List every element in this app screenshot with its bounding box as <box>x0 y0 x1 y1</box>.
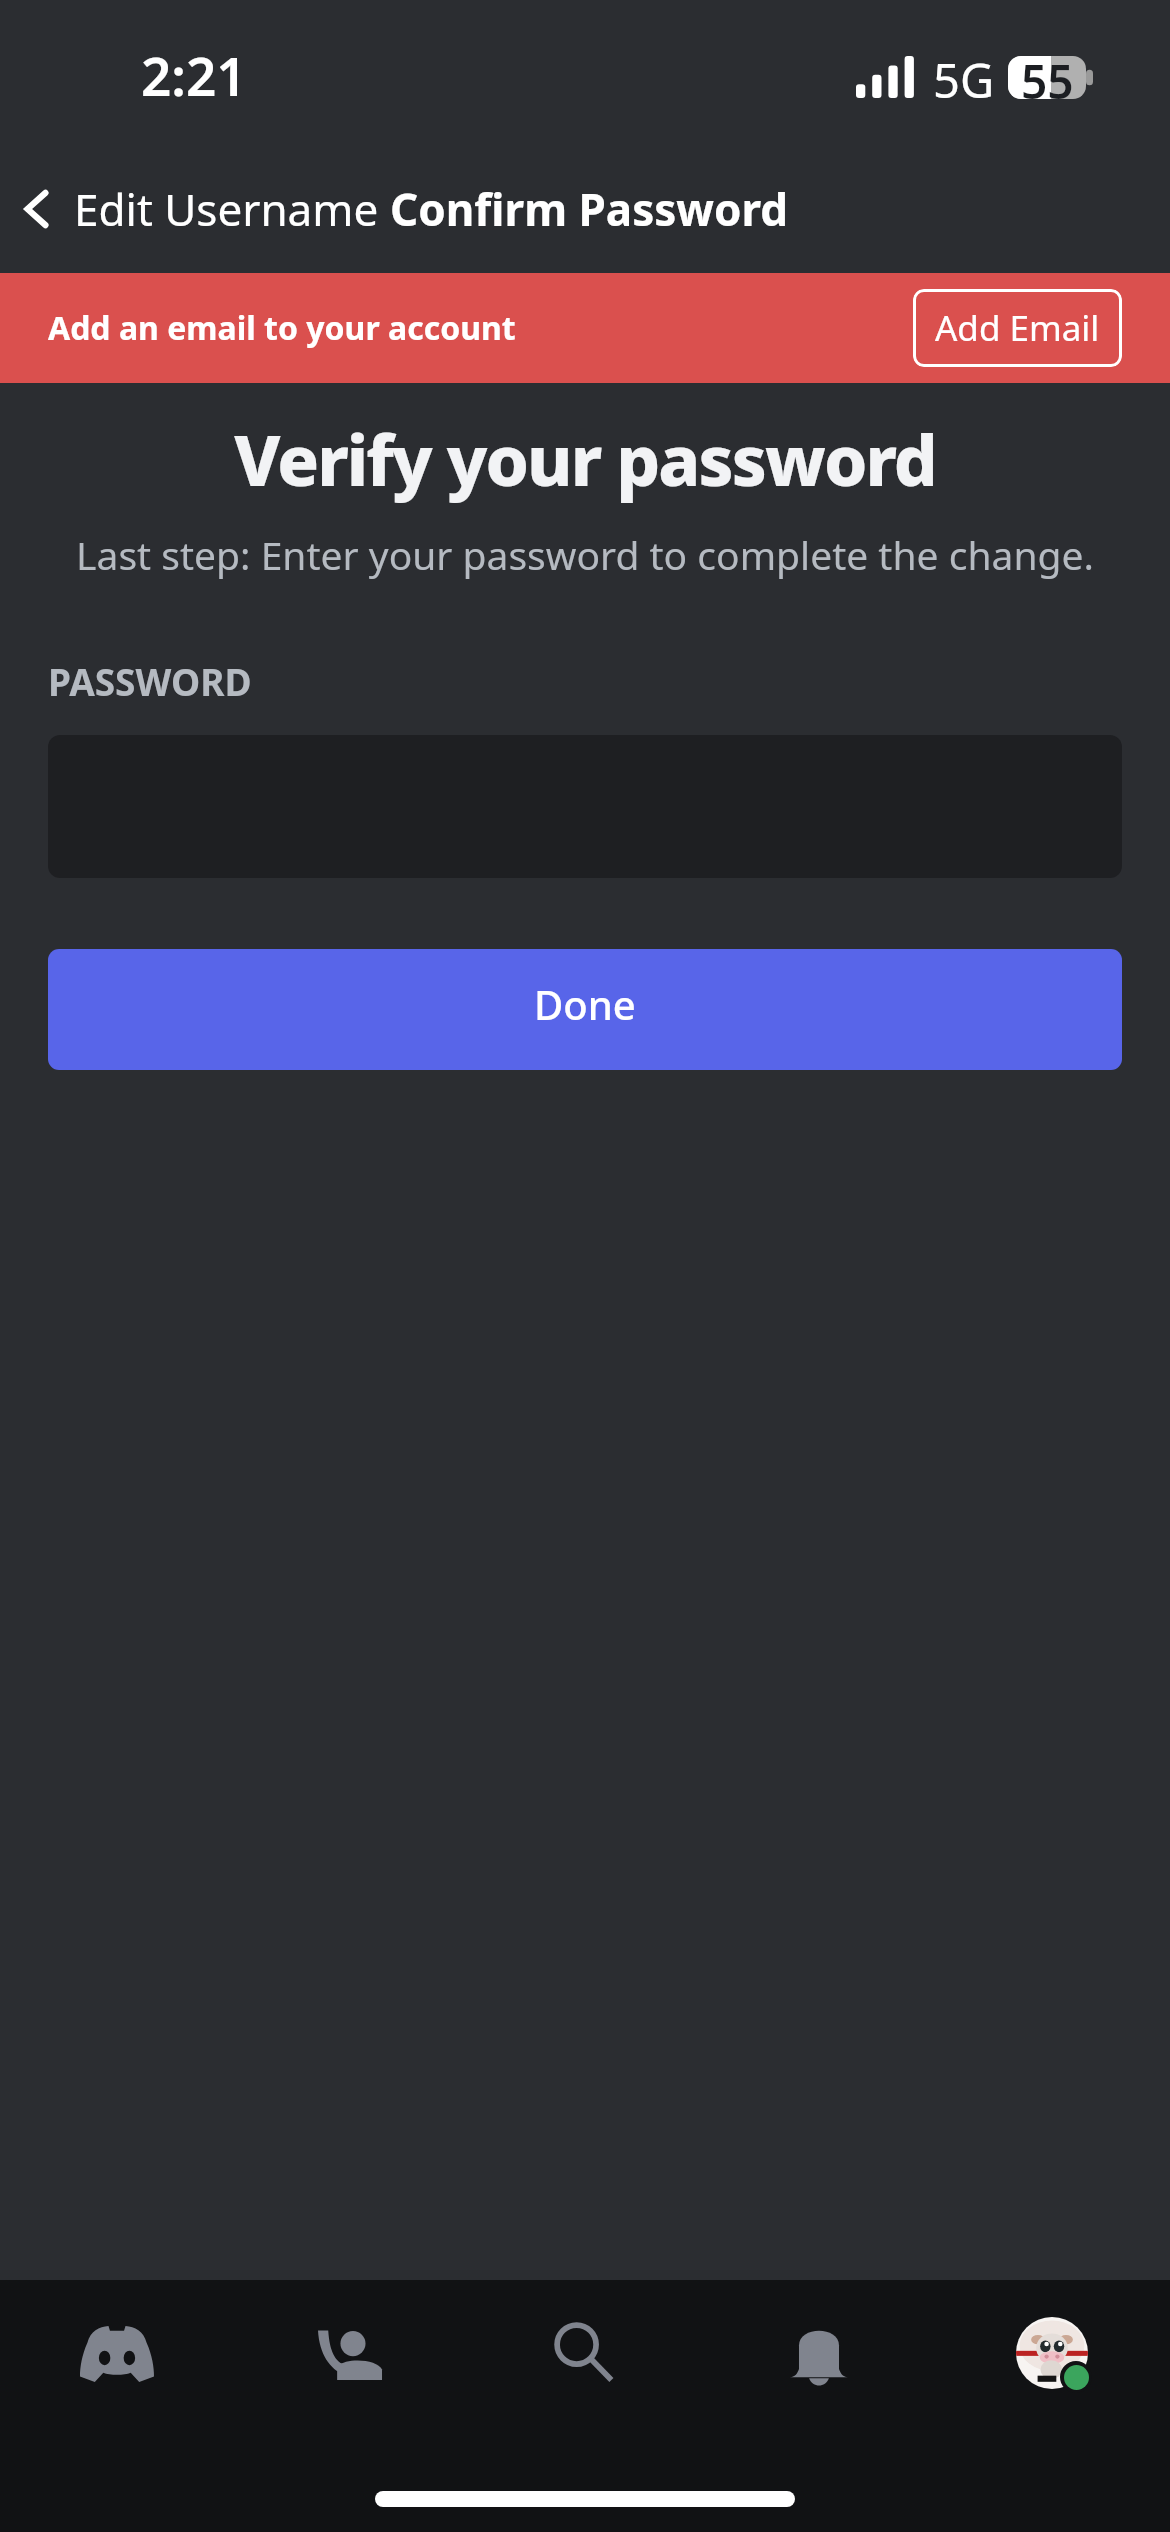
staticText: 2:21 <box>141 39 247 111</box>
staticText: Verify your password <box>0 412 1170 506</box>
button[interactable]: Friends <box>234 2280 468 2428</box>
staticText: Add an email to your account <box>48 306 516 350</box>
staticText: Last step: Enter your password to comple… <box>20 528 1150 581</box>
button[interactable]: Add Email <box>913 289 1122 367</box>
staticText: Edit Username <box>74 179 390 239</box>
button[interactable]: Notifications <box>702 2280 936 2428</box>
staticText: PASSWORD <box>48 656 252 706</box>
staticText: 55 <box>1021 50 1074 113</box>
other: Back <box>25 190 48 228</box>
staticText: Confirm Password <box>390 179 789 239</box>
button[interactable]: Profile <box>936 2280 1170 2428</box>
staticText: Done <box>534 977 636 1031</box>
button[interactable]: Back <box>0 145 1170 273</box>
button[interactable]: Done <box>48 949 1122 1070</box>
button[interactable]: Search <box>468 2280 702 2428</box>
button[interactable]: Home <box>0 2280 234 2428</box>
staticText: 5G <box>933 48 995 112</box>
staticText: Add Email <box>935 304 1100 352</box>
